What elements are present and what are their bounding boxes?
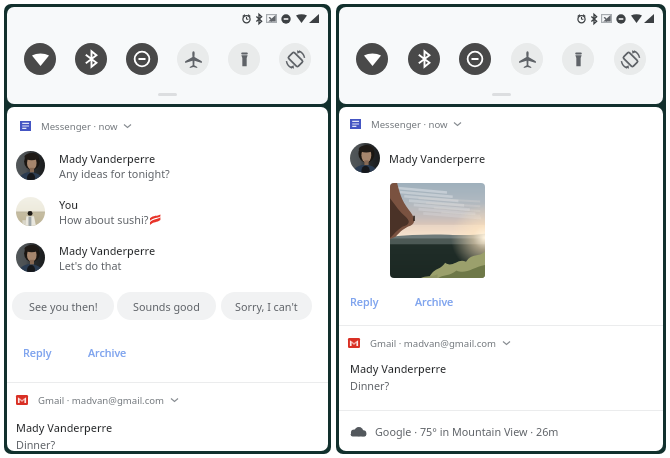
button[interactable]: Mady Vanderperre [16,243,316,277]
button[interactable]: Do not disturb [126,43,158,75]
button[interactable]: Gmail · madvan@gmail.com [339,331,663,355]
button[interactable]: Flashlight [562,43,594,75]
button[interactable]: Mady Vanderperre [16,151,316,185]
button[interactable]: Mady Vanderperre [16,420,113,451]
button[interactable]: Flashlight [228,43,260,75]
button[interactable]: Airplane mode [511,43,543,75]
button[interactable]: Messenger · now [339,112,663,136]
button[interactable]: Bluetooth [408,43,440,75]
staticText: Gmail · madvan@gmail.com [370,337,497,350]
staticText: Archive [88,345,127,360]
button[interactable] [390,183,485,278]
button[interactable]: Archive [411,287,458,315]
button[interactable]: Wi-Fi [356,43,388,75]
button[interactable]: Auto rotate [614,43,646,75]
staticText: Messenger · now [371,118,448,131]
button[interactable]: Auto rotate [279,43,311,75]
staticText: Let's do that [59,258,122,273]
staticText: Reply [350,294,379,309]
button[interactable]: Mady Vanderperre [350,143,663,173]
button[interactable]: Sorry, I can't [221,292,312,320]
button[interactable]: Archive [84,338,131,366]
button[interactable]: Google · 75° in Mountain View · 26m [339,411,663,445]
staticText: Mady Vanderperre [389,151,486,166]
button[interactable]: Mady Vanderperre [350,361,447,393]
staticText: Any ideas for tonight? [59,166,170,181]
staticText: Google · 75° in Mountain View · 26m [375,424,559,439]
button[interactable]: Airplane mode [177,43,209,75]
button[interactable]: You [16,197,316,231]
button[interactable]: Reply [339,287,387,315]
staticText: See you then! [29,299,98,314]
staticText: Archive [415,294,454,309]
button[interactable]: Messenger · now [7,114,328,138]
button[interactable]: See you then! [12,292,114,320]
staticText: Gmail · madvan@gmail.com [38,394,165,407]
button[interactable]: Gmail · madvan@gmail.com [7,388,328,412]
staticText: Dinner? [350,378,390,393]
button[interactable]: Do not disturb [459,43,491,75]
staticText: Dinner? [16,437,56,451]
staticText: Messenger · now [41,120,118,133]
staticText: Mady Vanderperre [16,420,113,435]
staticText: Reply [23,345,52,360]
button[interactable]: Sounds good [117,292,216,320]
staticText: Sounds good [133,299,200,314]
button[interactable]: Bluetooth [75,43,107,75]
staticText: Mady Vanderperre [350,361,447,376]
staticText: Mady Vanderperre [59,151,156,166]
staticText: You [59,197,79,212]
button[interactable]: Wi-Fi [24,43,56,75]
button[interactable]: Reply [7,338,60,366]
staticText: How about sushi? [59,212,149,227]
staticText: Sorry, I can't [235,299,298,314]
staticText: Mady Vanderperre [59,243,156,258]
